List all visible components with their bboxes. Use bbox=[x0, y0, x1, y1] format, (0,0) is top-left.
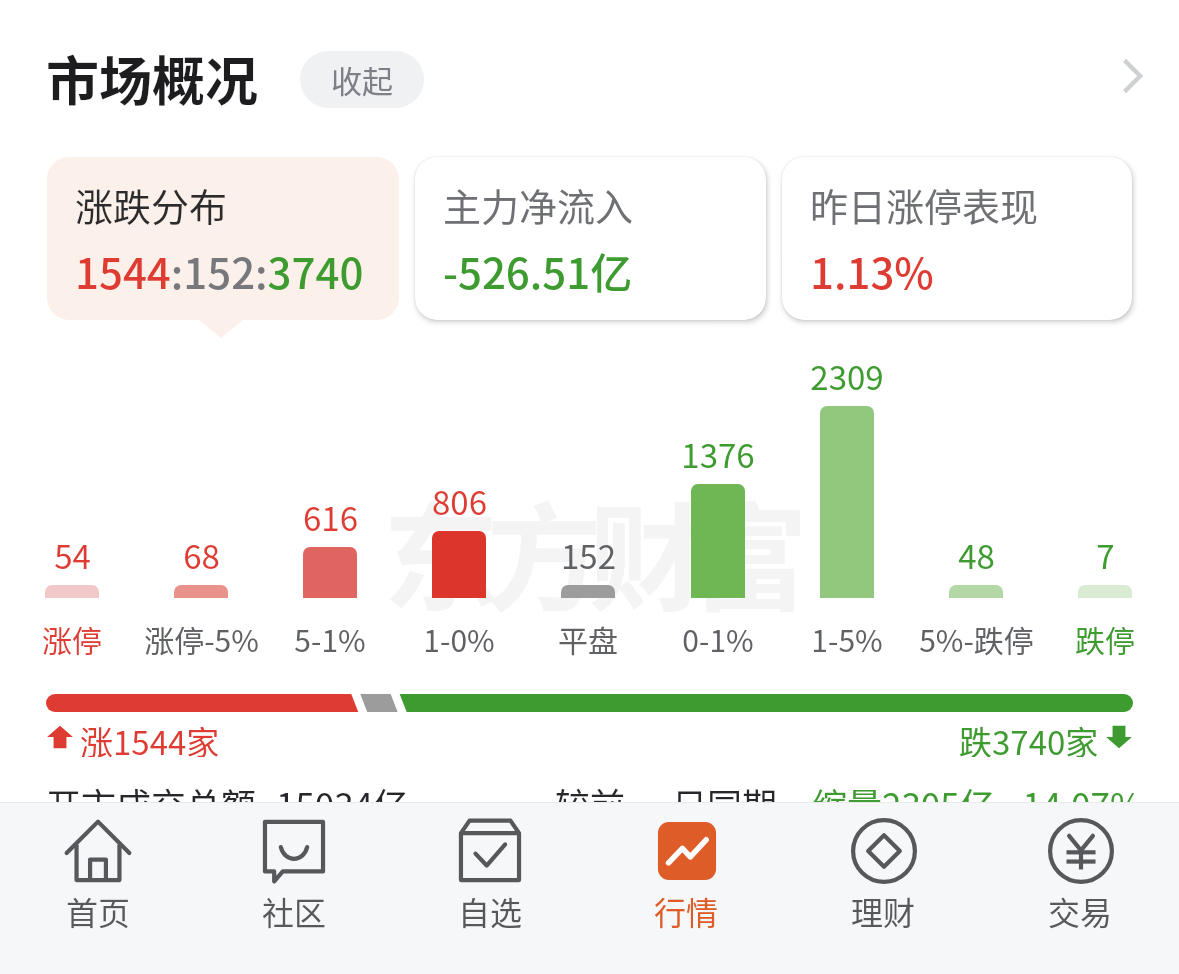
staticText: 交易 bbox=[1048, 888, 1113, 934]
button[interactable]: 市场概况 bbox=[46, 40, 258, 117]
staticText: 48 bbox=[958, 531, 995, 579]
staticText: 1376 bbox=[681, 430, 755, 478]
staticText: 0-1% bbox=[682, 617, 754, 660]
staticText: 理财 bbox=[851, 888, 916, 934]
button[interactable]: 查看更多 bbox=[1100, 45, 1162, 107]
staticText: 涨1544家 bbox=[80, 717, 220, 757]
button[interactable]: 理财 bbox=[785, 803, 982, 974]
button[interactable]: 交易 bbox=[982, 803, 1179, 974]
button[interactable]: 自选 bbox=[392, 803, 588, 974]
staticText: 152 bbox=[561, 531, 616, 579]
staticText: 较前 bbox=[555, 778, 626, 829]
staticText: 日同期 bbox=[672, 778, 778, 829]
button[interactable]: 主力净流入 bbox=[415, 157, 766, 320]
staticText: 市场概况 bbox=[46, 40, 258, 117]
staticText: 开市成交总额 bbox=[46, 778, 257, 829]
staticText: 跌3740家 bbox=[959, 717, 1099, 757]
staticText: 1-5% bbox=[811, 617, 883, 660]
staticText: 2309 bbox=[810, 352, 884, 400]
staticText: 1544:152:3740 bbox=[75, 240, 364, 301]
staticText: 68 bbox=[183, 531, 220, 579]
staticText: 15034亿 bbox=[276, 778, 409, 829]
staticText: 社区 bbox=[262, 888, 327, 934]
button[interactable]: 行情 bbox=[588, 803, 785, 974]
button[interactable]: 收起 bbox=[300, 51, 424, 108]
staticText: 主力净流入 bbox=[443, 177, 634, 232]
staticText: 54 bbox=[54, 531, 91, 579]
staticText: 平盘 bbox=[558, 617, 618, 660]
staticText: 首页 bbox=[66, 888, 131, 934]
button[interactable]: 涨跌分布 bbox=[47, 157, 399, 320]
staticText: 东方财富 bbox=[383, 466, 795, 634]
staticText: 缩量2305亿 -14.07% bbox=[812, 778, 1143, 829]
staticText: 涨跌分布 bbox=[75, 177, 228, 232]
button[interactable]: 昨日涨停表现 bbox=[782, 157, 1132, 320]
staticText: 昨日涨停表现 bbox=[810, 177, 1039, 232]
staticText: 涨停-5% bbox=[144, 617, 259, 660]
staticText: 1.13% bbox=[810, 240, 934, 301]
staticText: 行情 bbox=[654, 888, 719, 934]
button[interactable]: 首页 bbox=[0, 803, 196, 974]
staticText: 7 bbox=[1096, 531, 1115, 579]
staticText: 1-0% bbox=[423, 617, 495, 660]
button[interactable]: 社区 bbox=[196, 803, 392, 974]
staticText: 5-1% bbox=[294, 617, 366, 660]
staticText: 5%-跌停 bbox=[919, 617, 1034, 660]
staticText: 616 bbox=[303, 493, 358, 541]
staticText: 自选 bbox=[458, 888, 523, 934]
staticText: 806 bbox=[432, 477, 487, 525]
staticText: -526.51亿 bbox=[443, 240, 633, 301]
staticText: 收起 bbox=[331, 57, 393, 102]
staticText: 涨停 bbox=[42, 617, 102, 660]
staticText: 跌停 bbox=[1075, 617, 1135, 660]
